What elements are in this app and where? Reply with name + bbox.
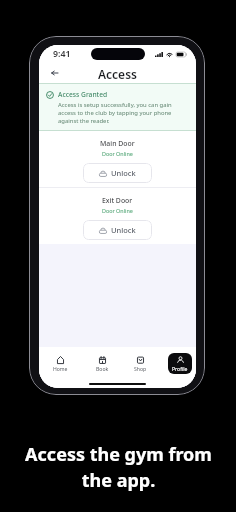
staticText: Profile (172, 366, 188, 373)
button[interactable]: Back (47, 66, 61, 80)
staticText: Door Online (102, 150, 133, 157)
button[interactable]: Shop (128, 353, 152, 374)
staticText: Door Online (102, 207, 133, 214)
staticText: Shop (134, 366, 147, 373)
staticText: 9:41 (53, 48, 71, 60)
button[interactable]: Book (90, 353, 114, 374)
staticText: Access Granted (58, 90, 108, 99)
staticText: Exit Door (102, 196, 133, 205)
staticText: Main Door (100, 139, 135, 148)
staticText: Access is setup successfully, you can ga… (58, 101, 188, 125)
staticText: Book (96, 366, 109, 373)
staticText: Unlock (111, 168, 136, 178)
button[interactable]: Home (48, 353, 72, 374)
staticText: Access (98, 66, 137, 82)
staticText: Access the gym from the app. (25, 442, 212, 492)
button[interactable]: Profile (168, 353, 192, 374)
staticText: Unlock (111, 225, 136, 235)
staticText: Home (53, 366, 68, 373)
button[interactable]: Unlock (83, 163, 152, 183)
button[interactable]: Unlock (83, 220, 152, 240)
